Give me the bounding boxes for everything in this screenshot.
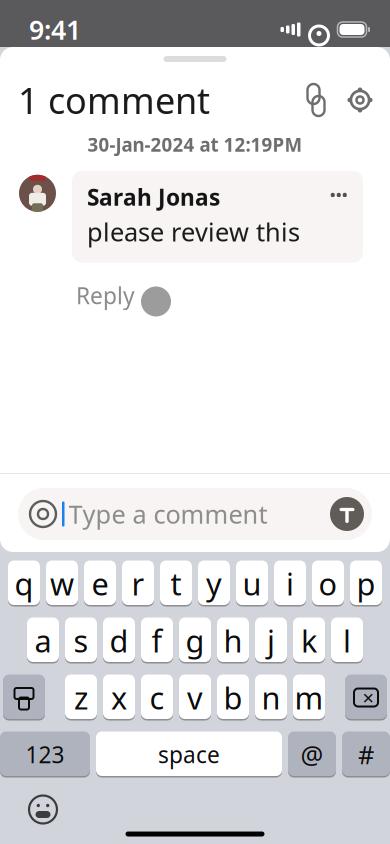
- staticText: q: [14, 563, 33, 604]
- button[interactable]: w: [46, 560, 78, 606]
- button[interactable]: #: [342, 731, 390, 777]
- staticText: 30-Jan-2024 at 12:19PM: [87, 132, 302, 157]
- staticText: m: [294, 677, 323, 718]
- staticText: c: [149, 677, 164, 718]
- staticText: b: [223, 677, 242, 718]
- button[interactable]: Delete: [345, 674, 387, 720]
- button[interactable]: 123: [0, 731, 90, 777]
- button[interactable]: Mention someone: [24, 495, 62, 533]
- button[interactable]: z: [65, 674, 97, 720]
- button[interactable]: d: [103, 617, 135, 663]
- button[interactable]: s: [65, 617, 97, 663]
- staticText: Type a comment: [68, 497, 267, 531]
- button[interactable]: c: [141, 674, 173, 720]
- button[interactable]: space: [96, 731, 282, 777]
- button[interactable]: Reply: [74, 274, 137, 317]
- button[interactable]: n: [255, 674, 287, 720]
- button[interactable]: Shift: [3, 674, 45, 720]
- button[interactable]: r: [122, 560, 154, 606]
- staticText: k: [301, 620, 317, 661]
- staticText: z: [74, 677, 88, 718]
- button[interactable]: y: [198, 560, 230, 606]
- button[interactable]: v: [179, 674, 211, 720]
- staticText: f: [151, 620, 162, 661]
- staticText: u: [242, 563, 261, 604]
- staticText: i: [286, 563, 294, 604]
- staticText: 1 comment: [18, 76, 210, 124]
- staticText: @: [300, 738, 323, 771]
- staticText: #: [358, 738, 374, 771]
- button[interactable]: Emoji: [21, 787, 65, 831]
- button[interactable]: l: [331, 617, 363, 663]
- staticText: o: [318, 563, 337, 604]
- staticText: y: [206, 563, 222, 604]
- button[interactable]: @: [288, 731, 336, 777]
- button[interactable]: q: [8, 560, 40, 606]
- button[interactable]: Activity: [294, 78, 338, 122]
- staticText: x: [111, 677, 127, 718]
- button[interactable]: t: [160, 560, 192, 606]
- staticText: 123: [25, 739, 64, 769]
- staticText: a: [34, 620, 51, 661]
- staticText: space: [158, 739, 220, 769]
- button[interactable]: Send: [330, 497, 364, 531]
- staticText: Reply: [76, 280, 135, 311]
- staticText: l: [343, 620, 351, 661]
- button[interactable]: x: [103, 674, 135, 720]
- staticText: e: [91, 563, 108, 604]
- button[interactable]: g: [179, 617, 211, 663]
- staticText: Sarah Jonas: [87, 182, 220, 212]
- button[interactable]: k: [293, 617, 325, 663]
- staticText: ×: [362, 684, 373, 711]
- button[interactable]: u: [236, 560, 268, 606]
- staticText: p: [356, 563, 375, 604]
- staticText: v: [187, 677, 203, 718]
- staticText: d: [109, 620, 128, 661]
- staticText: •••: [330, 185, 348, 204]
- button[interactable]: m: [293, 674, 325, 720]
- staticText: g: [185, 620, 204, 661]
- staticText: j: [267, 620, 275, 661]
- staticText: please review this: [87, 215, 300, 248]
- staticText: s: [73, 620, 88, 661]
- button[interactable]: i: [274, 560, 306, 606]
- staticText: t: [170, 563, 181, 604]
- staticText: w: [50, 563, 74, 604]
- button[interactable]: j: [255, 617, 287, 663]
- button[interactable]: Settings: [338, 78, 382, 122]
- button[interactable]: a: [27, 617, 59, 663]
- button[interactable]: o: [312, 560, 344, 606]
- button[interactable]: e: [84, 560, 116, 606]
- button[interactable]: b: [217, 674, 249, 720]
- staticText: r: [131, 563, 144, 604]
- staticText: n: [261, 677, 280, 718]
- staticText: h: [223, 620, 242, 661]
- button[interactable]: Sarah Jonas: [72, 171, 363, 262]
- staticText: 9:41: [29, 12, 81, 47]
- button[interactable]: f: [141, 617, 173, 663]
- button[interactable]: h: [217, 617, 249, 663]
- button[interactable]: p: [350, 560, 382, 606]
